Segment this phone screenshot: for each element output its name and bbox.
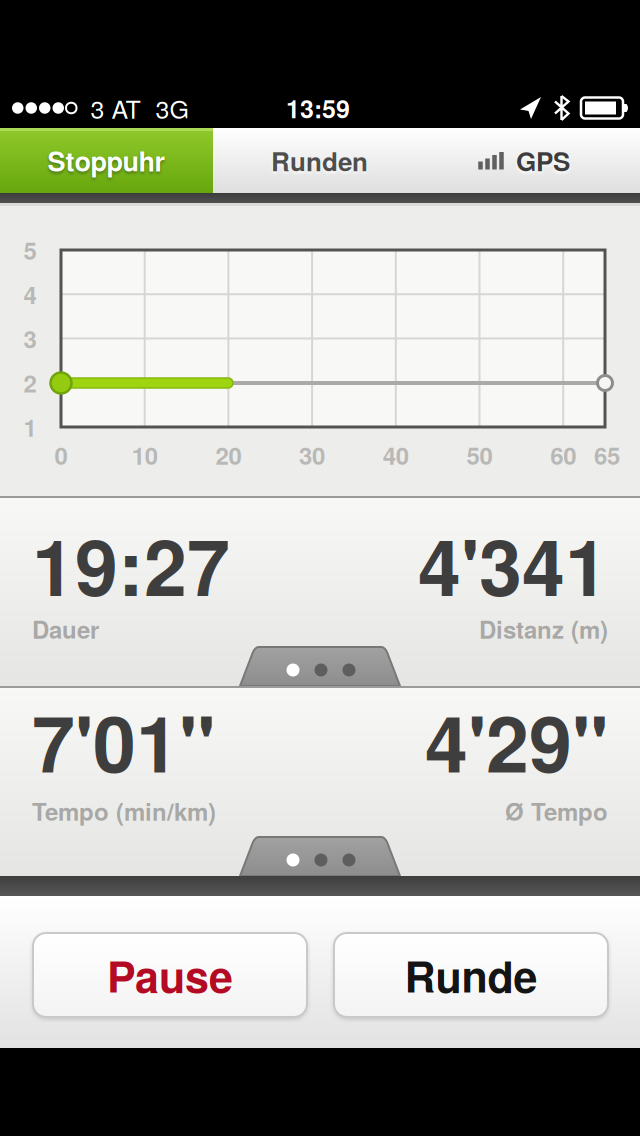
staticText: Runden xyxy=(271,142,368,179)
staticText: 50 xyxy=(466,438,492,472)
staticText: 30 xyxy=(299,438,325,472)
staticText: 10 xyxy=(132,438,158,472)
staticText: 1 xyxy=(23,410,36,444)
button[interactable]: Mehr anzeigen xyxy=(240,646,400,686)
staticText: 3G xyxy=(155,90,188,126)
staticText: 2 xyxy=(23,366,36,400)
staticText: 60 xyxy=(550,438,576,472)
button[interactable]: Pause xyxy=(33,933,307,1017)
staticText: 4'29" xyxy=(425,686,608,796)
staticText: Pause xyxy=(107,944,233,1006)
button[interactable]: Runden xyxy=(213,128,426,193)
staticText: Distanz (m) xyxy=(479,612,608,646)
staticText: Stoppuhr xyxy=(47,141,165,180)
button[interactable]: Stoppuhr xyxy=(0,128,213,193)
staticText: 3 AT xyxy=(90,90,140,126)
staticText: Ø Tempo xyxy=(505,794,608,828)
staticText: 40 xyxy=(383,438,409,472)
staticText: 0 xyxy=(54,438,67,472)
staticText: 7'01" xyxy=(32,686,215,796)
staticText: 13:59 xyxy=(286,90,350,126)
staticText: 5 xyxy=(23,233,36,267)
staticText: Dauer xyxy=(32,612,99,646)
button[interactable]: Mehr anzeigen xyxy=(240,836,400,876)
staticText: 19:27 xyxy=(32,509,230,620)
staticText: 4 xyxy=(23,277,36,311)
staticText: Runde xyxy=(404,944,537,1006)
button[interactable]: Runde xyxy=(334,933,608,1017)
staticText: 3 xyxy=(23,321,36,356)
staticText: 20 xyxy=(215,438,241,472)
staticText: 65 xyxy=(594,438,620,472)
staticText: GPS xyxy=(516,142,570,179)
staticText: Tempo (min/km) xyxy=(32,794,216,828)
button[interactable]: GPS xyxy=(426,128,640,193)
staticText: 4'341 xyxy=(418,509,608,620)
